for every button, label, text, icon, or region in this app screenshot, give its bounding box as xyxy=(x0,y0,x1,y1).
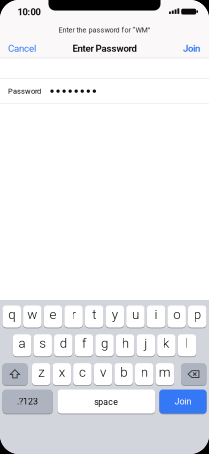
button[interactable]: o xyxy=(167,305,186,327)
staticText: Enter the password for “WM” xyxy=(58,26,150,34)
staticText: 10:00 xyxy=(17,6,40,17)
staticText: y xyxy=(112,307,118,322)
staticText: o xyxy=(173,307,180,322)
staticText: u xyxy=(132,307,139,322)
staticText: q xyxy=(8,307,15,322)
staticText: .?123 xyxy=(17,396,38,407)
button[interactable]: n xyxy=(135,363,153,385)
button[interactable]: d xyxy=(54,334,73,356)
button[interactable]: m xyxy=(156,363,174,385)
staticText: n xyxy=(141,364,148,380)
button[interactable]: Password xyxy=(0,79,209,103)
button[interactable]: v xyxy=(94,363,112,385)
staticText: i xyxy=(154,307,157,322)
staticText: k xyxy=(163,335,170,351)
button[interactable]: space xyxy=(57,389,155,413)
button[interactable]: u xyxy=(126,305,145,327)
button[interactable]: Cancel xyxy=(8,43,36,54)
staticText: e xyxy=(49,307,56,322)
button[interactable]: g xyxy=(95,334,114,356)
staticText: space xyxy=(94,397,118,407)
staticText: x xyxy=(59,364,65,380)
staticText: c xyxy=(79,364,86,380)
button[interactable]: k xyxy=(157,334,176,356)
staticText: v xyxy=(100,364,106,380)
button[interactable]: Join xyxy=(159,389,207,413)
button[interactable]: e xyxy=(44,305,62,327)
button[interactable] xyxy=(2,363,28,385)
staticText: s xyxy=(39,335,46,351)
button[interactable]: c xyxy=(73,363,92,385)
button[interactable]: q xyxy=(2,305,21,327)
staticText: z xyxy=(38,364,44,380)
button[interactable]: .?123 xyxy=(2,389,53,413)
staticText: Cancel xyxy=(8,43,36,54)
button[interactable]: f xyxy=(75,334,93,356)
staticText: r xyxy=(72,307,76,322)
staticText: m xyxy=(159,364,171,380)
button[interactable]: r xyxy=(64,305,83,327)
staticText: w xyxy=(27,307,37,322)
button[interactable]: j xyxy=(136,334,155,356)
button[interactable]: i xyxy=(147,305,165,327)
button[interactable]: Join xyxy=(183,43,200,54)
staticText: Join xyxy=(183,43,200,54)
button[interactable]: w xyxy=(23,305,42,327)
button[interactable]: h xyxy=(116,334,134,356)
staticText: h xyxy=(122,335,129,351)
staticText: a xyxy=(19,335,26,351)
staticText: f xyxy=(82,335,86,351)
staticText: d xyxy=(60,335,67,351)
staticText: j xyxy=(144,335,147,351)
button[interactable]: x xyxy=(53,363,71,385)
button[interactable]: y xyxy=(105,305,124,327)
button[interactable]: t xyxy=(85,305,103,327)
staticText: g xyxy=(101,335,108,351)
staticText: Join xyxy=(174,396,191,407)
staticText: p xyxy=(194,307,201,322)
staticText: t xyxy=(92,307,96,322)
staticText: Enter Password xyxy=(72,43,136,54)
button[interactable]: l xyxy=(178,334,196,356)
staticText: b xyxy=(120,364,127,380)
button[interactable]: p xyxy=(188,305,206,327)
staticText: Password xyxy=(8,87,41,95)
button[interactable]: a xyxy=(13,334,31,356)
button[interactable]: b xyxy=(114,363,133,385)
button[interactable] xyxy=(181,363,206,385)
button[interactable]: s xyxy=(33,334,52,356)
button[interactable]: z xyxy=(32,363,50,385)
staticText: l xyxy=(185,335,188,351)
